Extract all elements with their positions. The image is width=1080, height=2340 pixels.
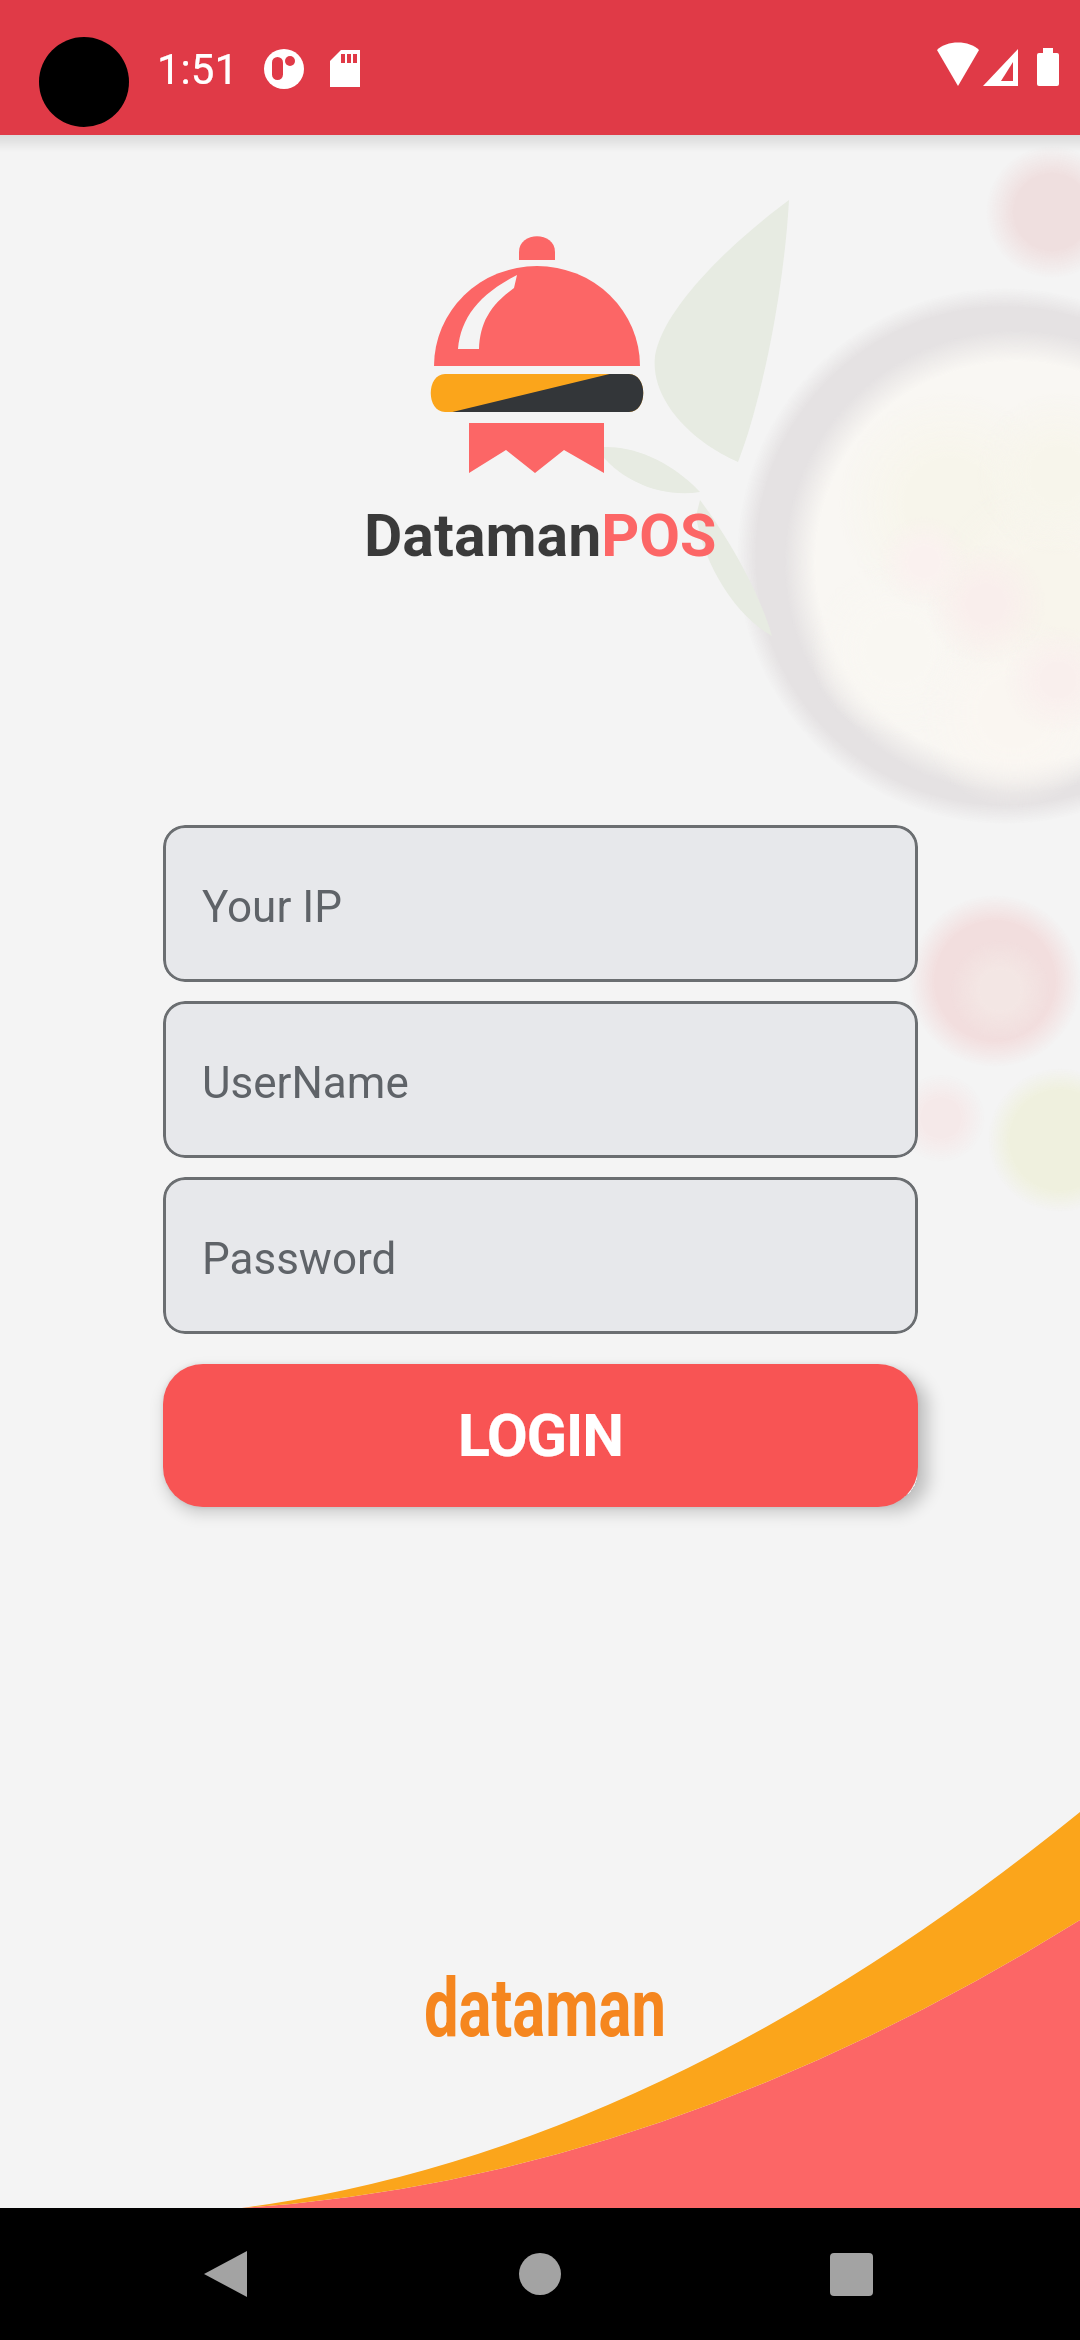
- staticText: dataman: [424, 1960, 666, 2056]
- staticText: Password: [202, 1233, 397, 1285]
- button[interactable]: Home: [360, 2208, 720, 2340]
- staticText: DatamanPOS: [364, 501, 717, 570]
- button[interactable]: Your IP: [163, 825, 918, 982]
- staticText: 1:51: [157, 45, 238, 94]
- button[interactable]: Password: [163, 1177, 918, 1334]
- button[interactable]: Back: [0, 2208, 360, 2340]
- staticText: UserName: [202, 1057, 409, 1109]
- button[interactable]: Recent apps: [720, 2208, 1080, 2340]
- button[interactable]: LOGIN: [163, 1364, 918, 1507]
- staticText: LOGIN: [458, 1401, 623, 1470]
- button[interactable]: UserName: [163, 1001, 918, 1158]
- staticText: Your IP: [202, 881, 342, 933]
